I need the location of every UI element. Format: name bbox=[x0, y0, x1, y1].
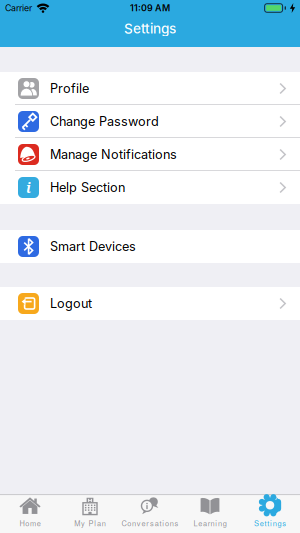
button[interactable]: i bbox=[0, 171, 300, 204]
staticText: Logout bbox=[50, 296, 92, 311]
staticText: My Plan bbox=[74, 518, 106, 528]
button[interactable]: Smart Devices bbox=[0, 230, 300, 263]
staticText: Learning bbox=[193, 518, 227, 528]
staticText: i bbox=[26, 178, 31, 197]
button[interactable]: Profile bbox=[0, 72, 300, 105]
staticText: Conversations bbox=[121, 518, 178, 528]
button[interactable]: My Plan bbox=[60, 495, 120, 533]
button[interactable]: Conversations bbox=[120, 495, 180, 533]
staticText: Home bbox=[19, 518, 41, 528]
staticText: Change Password bbox=[50, 114, 159, 129]
button[interactable]: Logout bbox=[0, 287, 300, 320]
button[interactable]: Learning bbox=[180, 495, 240, 533]
button[interactable]: Home bbox=[0, 495, 60, 533]
staticText: Profile bbox=[50, 81, 89, 96]
staticText: Carrier bbox=[5, 3, 32, 13]
staticText: Manage Notifications bbox=[50, 147, 177, 162]
staticText: Smart Devices bbox=[50, 239, 136, 254]
button[interactable]: Settings bbox=[240, 495, 300, 533]
staticText: Help Section bbox=[50, 180, 125, 195]
staticText: Settings bbox=[124, 20, 176, 37]
button[interactable]: Change Password bbox=[0, 105, 300, 138]
button[interactable]: Manage Notifications bbox=[0, 138, 300, 171]
staticText: Settings bbox=[254, 518, 286, 528]
staticText: 11:09 AM bbox=[130, 3, 170, 13]
